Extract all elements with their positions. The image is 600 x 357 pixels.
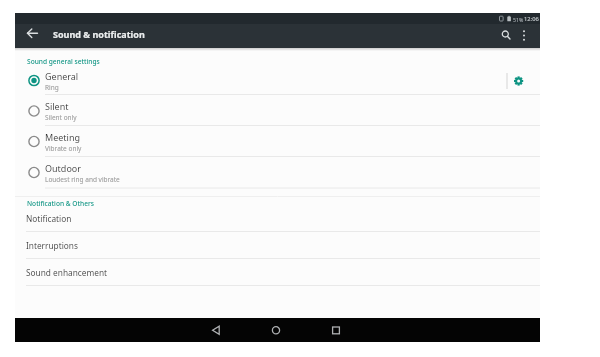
button[interactable]: Meeting bbox=[15, 126, 495, 157]
staticText: Interruptions bbox=[26, 240, 78, 251]
staticText: Meeting bbox=[45, 131, 80, 143]
button[interactable]: Interruptions bbox=[15, 232, 540, 259]
staticText: Sound general settings bbox=[27, 57, 100, 66]
button[interactable] bbox=[325, 320, 347, 340]
button[interactable] bbox=[497, 26, 516, 45]
staticText: Silent bbox=[45, 100, 69, 112]
staticText: Notification bbox=[26, 213, 72, 224]
button[interactable]: Notification bbox=[15, 205, 540, 232]
button[interactable] bbox=[510, 72, 528, 90]
staticText: Vibrate only bbox=[45, 144, 82, 153]
staticText: Ring bbox=[45, 83, 59, 92]
button[interactable] bbox=[265, 320, 287, 340]
button[interactable] bbox=[21, 26, 41, 46]
staticText: Notification & Others bbox=[27, 199, 94, 208]
staticText: Sound enhancement bbox=[26, 267, 108, 278]
staticText: Silent only bbox=[45, 113, 77, 122]
button[interactable]: Outdoor bbox=[15, 157, 495, 188]
staticText: Outdoor bbox=[45, 162, 81, 174]
button[interactable] bbox=[205, 320, 227, 340]
staticText: Loudest ring and vibrate bbox=[45, 175, 120, 184]
staticText: Sound & notification bbox=[53, 28, 145, 40]
staticText: 12:06 bbox=[524, 15, 539, 23]
staticText: General bbox=[45, 70, 79, 82]
button[interactable] bbox=[516, 26, 532, 46]
staticText: 51% bbox=[513, 16, 524, 23]
button[interactable]: Silent bbox=[15, 95, 495, 127]
button[interactable]: Sound enhancement bbox=[15, 259, 540, 286]
button[interactable]: General bbox=[15, 65, 495, 96]
